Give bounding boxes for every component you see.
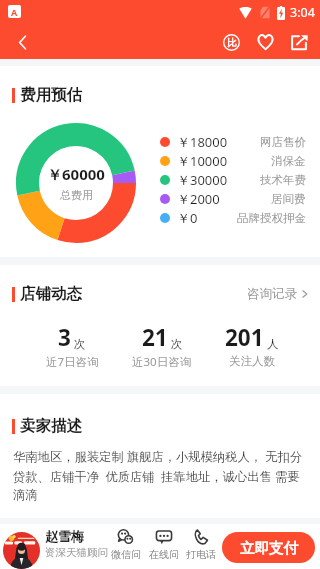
button[interactable]: Back: [5, 25, 39, 59]
staticText: 店铺动态: [20, 284, 82, 304]
button[interactable]: 咨询记录: [247, 286, 308, 302]
staticText: 次: [171, 337, 183, 351]
button[interactable]: 赵雪梅: [3, 525, 108, 562]
staticText: 赵雪梅: [45, 528, 84, 544]
staticText: ￥0: [177, 209, 198, 227]
staticText: 网店售价: [260, 135, 306, 149]
button[interactable]: Share: [282, 26, 316, 58]
staticText: 技术年费: [260, 173, 306, 187]
button[interactable]: 在线问: [145, 527, 183, 561]
staticText: ￥30000: [177, 171, 228, 189]
staticText: ￥10000: [177, 152, 228, 170]
staticText: 在线问: [149, 548, 179, 561]
staticText: ￥60000: [47, 164, 105, 184]
staticText: 近30日咨询: [132, 354, 192, 370]
staticText: 品牌授权押金: [237, 211, 306, 225]
button[interactable]: 21: [117, 320, 207, 370]
staticText: 21: [142, 322, 168, 353]
button[interactable]: Favorite: [248, 26, 282, 58]
staticText: 居间费: [271, 192, 306, 206]
staticText: 费用预估: [20, 85, 82, 105]
staticText: 消保金: [271, 154, 306, 168]
staticText: 卖家描述: [20, 416, 82, 436]
staticText: 立即支付: [240, 539, 298, 557]
staticText: 打电话: [186, 548, 216, 561]
button[interactable]: 立即支付: [222, 532, 315, 563]
staticText: 微信问: [111, 548, 141, 561]
staticText: 3: [58, 322, 71, 353]
button[interactable]: 微信问: [107, 527, 145, 561]
staticText: 资深天猫顾问: [45, 546, 108, 559]
staticText: 比: [227, 37, 237, 49]
staticText: 人: [267, 337, 279, 351]
staticText: 总费用: [60, 188, 93, 202]
button[interactable]: 201: [207, 320, 297, 370]
button[interactable]: 打电话: [182, 527, 220, 561]
staticText: 次: [74, 337, 86, 351]
staticText: 近7日咨询: [46, 354, 99, 370]
staticText: ￥18000: [177, 133, 228, 151]
staticText: 关注人数: [229, 354, 275, 368]
staticText: 201: [225, 322, 264, 353]
staticText: 咨询记录: [247, 286, 297, 302]
staticText: ￥2000: [177, 190, 220, 208]
staticText: 3:04: [290, 4, 315, 21]
staticText: 华南地区，服装定制 旗舰店，小规模纳税人， 无扣分 贷款、店铺干净 优质店铺 挂…: [13, 448, 315, 502]
button[interactable]: 3: [27, 320, 117, 370]
button[interactable]: Compare: [214, 26, 248, 58]
staticText: A: [11, 6, 18, 18]
